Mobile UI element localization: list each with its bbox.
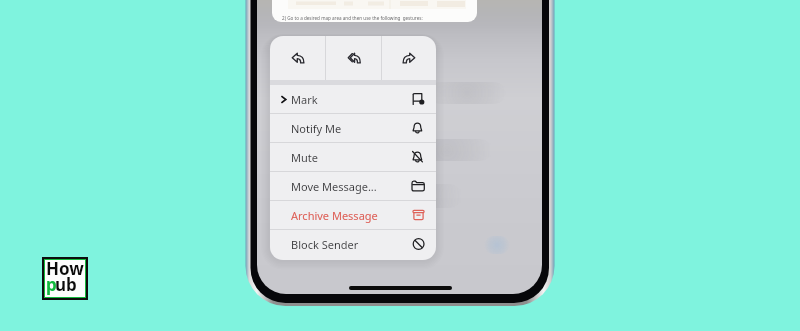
button[interactable]: Howpub logo xyxy=(42,257,88,300)
staticText: Archive Message xyxy=(291,208,378,223)
button[interactable]: Block Sender xyxy=(270,230,436,258)
button[interactable]: Reply all xyxy=(326,36,381,79)
staticText: p xyxy=(46,273,57,296)
button[interactable]: Forward xyxy=(382,36,436,79)
staticText: ub xyxy=(55,273,77,296)
button[interactable]: Mark xyxy=(270,85,436,113)
staticText: Mark xyxy=(291,92,318,107)
staticText: Mute xyxy=(291,150,318,165)
staticText: 2) Go to a desired map area and then use… xyxy=(282,15,423,21)
button[interactable]: Mute xyxy=(270,143,436,171)
button[interactable]: Reply xyxy=(270,36,325,79)
button[interactable]: Move Message... xyxy=(270,172,436,200)
staticText: Move Message... xyxy=(291,179,377,194)
button[interactable]: Archive Message xyxy=(270,201,436,229)
staticText: Block Sender xyxy=(291,237,359,252)
button[interactable]: Notify Me xyxy=(270,114,436,142)
staticText: How xyxy=(46,260,84,280)
staticText: Notify Me xyxy=(291,121,342,136)
